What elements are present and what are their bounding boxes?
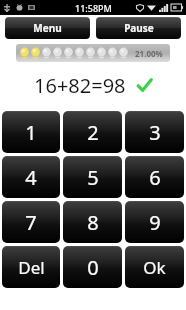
staticText: 7 <box>25 209 37 236</box>
staticText: 1 <box>25 119 37 146</box>
staticText: 5 <box>87 164 99 191</box>
staticText: 9 <box>149 209 161 236</box>
staticText: Menu <box>33 21 62 35</box>
button[interactable]: 3 <box>125 111 184 153</box>
button[interactable]: 1 <box>2 111 60 153</box>
staticText: 0 <box>87 254 99 281</box>
button[interactable]: 7 <box>2 201 60 243</box>
button[interactable]: 9 <box>125 201 184 243</box>
staticText: 6 <box>149 164 161 191</box>
staticText: 16+82=98 <box>34 72 126 99</box>
staticText: 2 <box>87 119 99 146</box>
button[interactable]: 2 <box>63 111 122 153</box>
button[interactable]: Menu <box>5 17 90 39</box>
staticText: Ok <box>143 256 166 279</box>
staticText: 11:58PM <box>75 2 112 14</box>
staticText: 4 <box>25 164 37 191</box>
staticText: Del <box>18 256 45 279</box>
button[interactable]: Ok <box>125 246 184 288</box>
button[interactable]: 6 <box>125 156 184 198</box>
staticText: 8 <box>87 209 99 236</box>
button[interactable]: 4 <box>2 156 60 198</box>
staticText: Pause <box>124 21 154 35</box>
button[interactable]: 5 <box>63 156 122 198</box>
button[interactable]: Del <box>2 246 60 288</box>
button[interactable]: Pause <box>96 17 181 39</box>
button[interactable]: 0 <box>63 246 122 288</box>
staticText: 21.00% <box>135 48 163 59</box>
staticText: 3 <box>149 119 161 146</box>
button[interactable]: 8 <box>63 201 122 243</box>
